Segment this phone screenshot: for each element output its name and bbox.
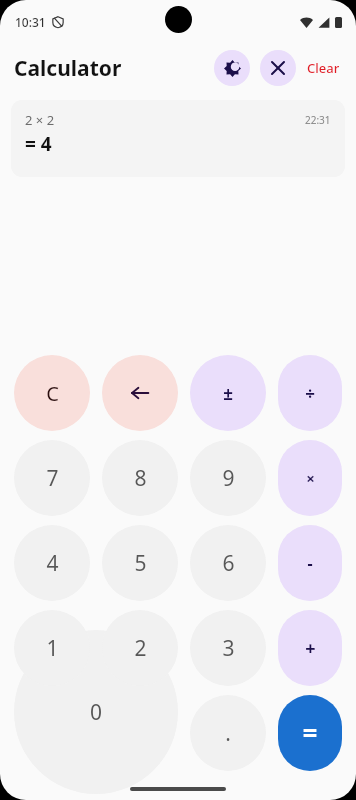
staticText: . — [225, 719, 231, 748]
staticText: ÷ — [305, 382, 315, 405]
staticText: 10:31 — [15, 14, 46, 30]
button[interactable]: Minus — [278, 525, 342, 601]
button[interactable]: 1 — [14, 610, 90, 686]
button[interactable]: 5 — [102, 525, 178, 601]
button[interactable]: 0 — [14, 630, 178, 794]
staticText: × — [306, 468, 315, 488]
staticText: ± — [223, 382, 233, 405]
staticText: - — [307, 552, 313, 574]
staticText: 0 — [90, 698, 103, 727]
button[interactable]: 2 — [102, 610, 178, 686]
staticText: Clear — [307, 59, 340, 77]
button[interactable]: 9 — [190, 440, 266, 516]
button[interactable]: 8 — [102, 440, 178, 516]
button[interactable]: 3 — [190, 610, 266, 686]
button[interactable]: Equals — [278, 695, 342, 771]
staticText: 8 — [134, 464, 147, 493]
button[interactable]: Plus minus — [190, 355, 266, 431]
staticText: 1 — [46, 634, 59, 663]
button[interactable]: Clear — [305, 53, 342, 83]
button[interactable]: 2 × 2 — [11, 100, 345, 177]
staticText: 4 — [46, 549, 59, 578]
staticText: 3 — [222, 634, 235, 663]
button[interactable]: Decimal point — [190, 695, 266, 771]
button[interactable]: 4 — [14, 525, 90, 601]
staticText: 2 — [134, 634, 147, 663]
staticText: = 4 — [25, 131, 52, 157]
button[interactable]: Toggle dark theme — [214, 50, 250, 86]
button[interactable]: Divide — [278, 355, 342, 431]
staticText: 7 — [46, 464, 59, 493]
button[interactable]: Multiply — [278, 440, 342, 516]
staticText: 22:31 — [305, 113, 331, 127]
staticText: C — [46, 380, 59, 407]
staticText: 2 × 2 — [25, 111, 55, 129]
staticText: + — [305, 636, 316, 661]
button[interactable]: Clear — [14, 355, 90, 431]
button[interactable]: Close — [260, 50, 296, 86]
button[interactable]: 7 — [14, 440, 90, 516]
staticText: 9 — [222, 464, 235, 493]
staticText: Calculator — [14, 54, 122, 83]
staticText: 5 — [134, 549, 147, 578]
button[interactable]: Backspace — [102, 355, 178, 431]
button[interactable]: 6 — [190, 525, 266, 601]
staticText: 6 — [222, 549, 235, 578]
button[interactable]: Plus — [278, 610, 342, 686]
